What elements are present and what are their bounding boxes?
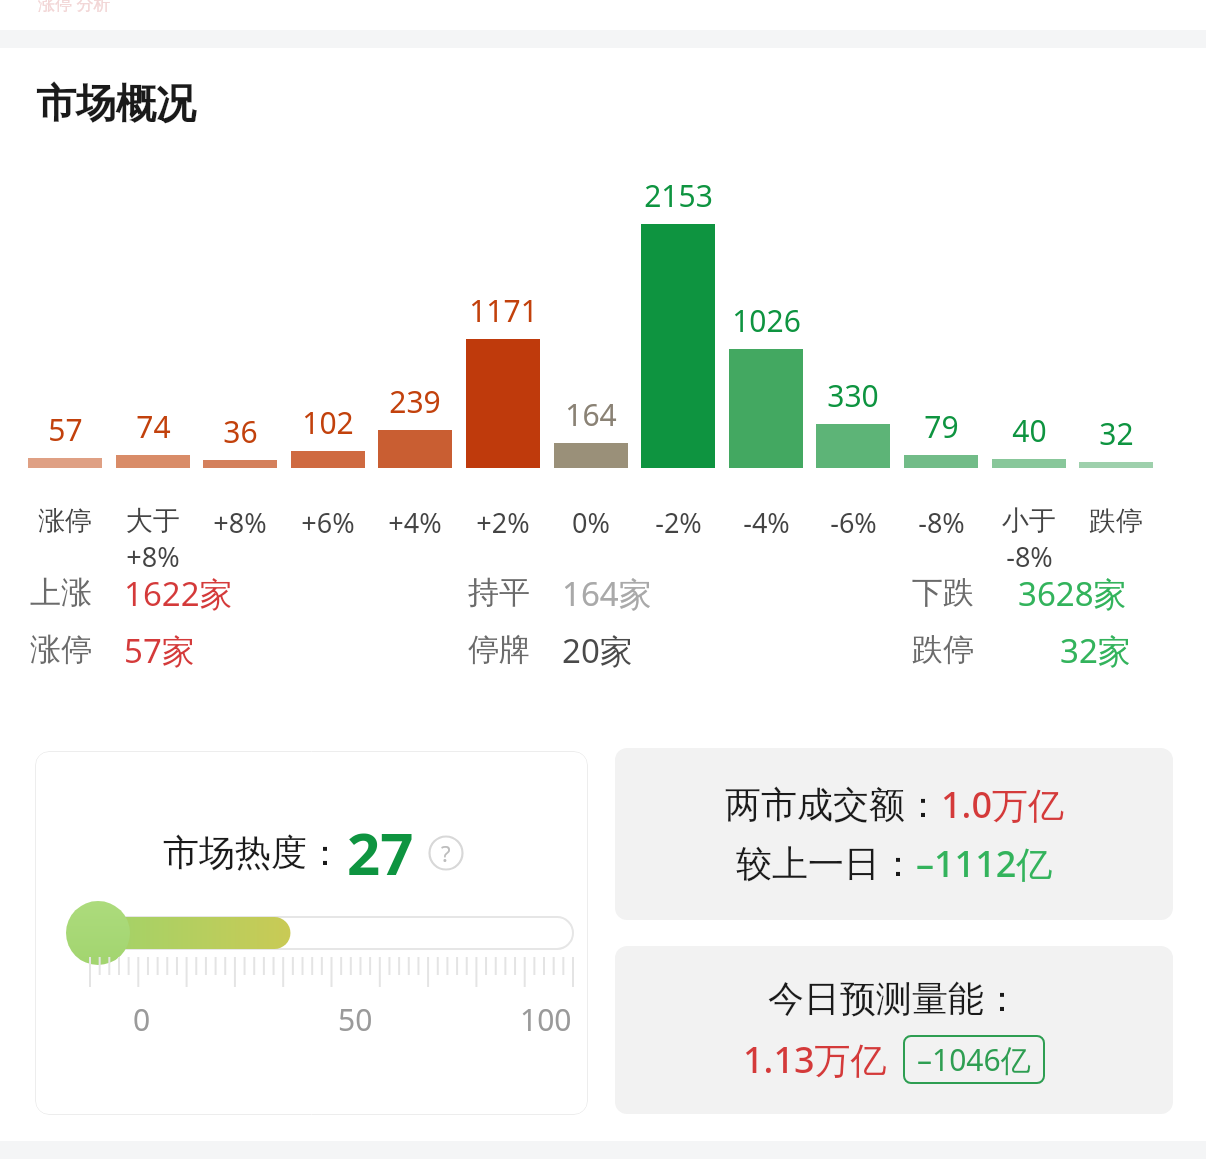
staticText: 下跌 <box>912 573 974 612</box>
staticText: 164家 <box>562 571 652 616</box>
staticText: –1046亿 <box>917 1039 1031 1080</box>
staticText: +4% <box>388 504 442 541</box>
staticText: 大于 <box>126 504 180 538</box>
staticText: 涨停 <box>30 630 92 669</box>
button[interactable]: 市场热度： <box>35 751 588 1115</box>
staticText: +6% <box>301 504 355 541</box>
staticText: 27 <box>347 813 414 892</box>
staticText: +8% <box>213 504 267 541</box>
staticText: 涨停 <box>38 504 92 538</box>
staticText: 1622家 <box>124 571 233 616</box>
staticText: 1.13万亿 <box>743 1035 887 1084</box>
staticText: 市场热度： <box>163 830 343 875</box>
staticText: 两市成交额： <box>725 782 941 827</box>
staticText: 2153 <box>644 175 713 216</box>
staticText: 57家 <box>124 628 195 673</box>
button[interactable]: 今日预测量能： <box>615 946 1173 1114</box>
staticText: -2% <box>655 504 702 541</box>
staticText: 持平 <box>468 573 530 612</box>
staticText: 57 <box>48 409 83 450</box>
staticText: +2% <box>476 504 530 541</box>
staticText: -6% <box>830 504 877 541</box>
button[interactable]: 两市成交额： <box>615 748 1173 920</box>
staticText: -4% <box>743 504 790 541</box>
staticText: 市场概况 <box>36 78 196 128</box>
staticText: 74 <box>136 406 171 447</box>
staticText: 1171 <box>469 290 538 331</box>
staticText: 跌停 <box>912 630 974 669</box>
staticText: ? <box>441 838 451 868</box>
staticText: 1.0万亿 <box>941 780 1064 829</box>
staticText: 跌停 <box>1089 504 1143 538</box>
staticText: 164 <box>565 394 617 435</box>
staticText: 239 <box>389 381 441 422</box>
staticText: 36 <box>223 411 258 452</box>
staticText: 32 <box>1099 413 1134 454</box>
staticText: 停牌 <box>468 630 530 669</box>
staticText: 涨停 分析 <box>38 0 111 12</box>
staticText: –1112亿 <box>916 839 1053 888</box>
staticText: 0% <box>572 504 610 541</box>
staticText: 3628家 <box>1018 571 1127 616</box>
staticText: -8% <box>1006 538 1053 574</box>
button[interactable]: 市场热度说明 <box>428 835 464 871</box>
staticText: 小于 <box>1002 504 1056 538</box>
staticText: 330 <box>827 375 879 416</box>
staticText: 1026 <box>732 300 801 341</box>
staticText: 0 <box>133 999 151 1040</box>
staticText: -8% <box>918 504 965 541</box>
staticText: 上涨 <box>30 573 92 612</box>
staticText: 102 <box>302 402 354 443</box>
staticText: 今日预测量能： <box>768 976 1020 1021</box>
staticText: 40 <box>1012 410 1047 451</box>
staticText: 20家 <box>562 628 633 673</box>
staticText: 50 <box>338 999 373 1040</box>
staticText: 79 <box>924 406 959 447</box>
staticText: +8% <box>126 538 180 574</box>
staticText: 32家 <box>1060 628 1131 673</box>
staticText: 100 <box>520 999 572 1040</box>
staticText: 较上一日： <box>736 841 916 886</box>
